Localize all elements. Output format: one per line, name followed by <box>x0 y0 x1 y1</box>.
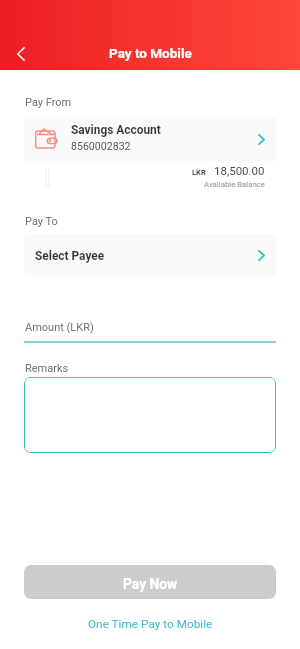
staticText: Remarks <box>25 362 69 375</box>
button[interactable]: Savings account wallet <box>24 117 276 194</box>
button[interactable] <box>24 377 276 453</box>
button[interactable]: Select Payee <box>24 234 276 276</box>
staticText: Select Payee <box>35 249 105 263</box>
staticText: Amount (LKR) <box>25 321 94 334</box>
button[interactable]: Change account <box>250 128 272 150</box>
button[interactable]: Select payee <box>250 244 272 266</box>
staticText: Savings Account <box>71 123 161 137</box>
staticText: Available Balance <box>204 180 265 189</box>
staticText: Pay To <box>25 215 58 228</box>
staticText: Pay to Mobile <box>109 45 192 61</box>
staticText: Pay Now <box>123 576 178 592</box>
staticText: LKR <box>192 168 206 177</box>
staticText: 8560002832 <box>71 140 131 152</box>
staticText: Pay From <box>25 96 72 109</box>
staticText: 18,500.00 <box>214 164 265 177</box>
button[interactable]: Back <box>3 36 39 72</box>
button[interactable]: One Time Pay to Mobile <box>78 613 223 635</box>
other: Savings account wallet <box>35 127 58 149</box>
button[interactable]: Pay Now <box>24 565 276 599</box>
